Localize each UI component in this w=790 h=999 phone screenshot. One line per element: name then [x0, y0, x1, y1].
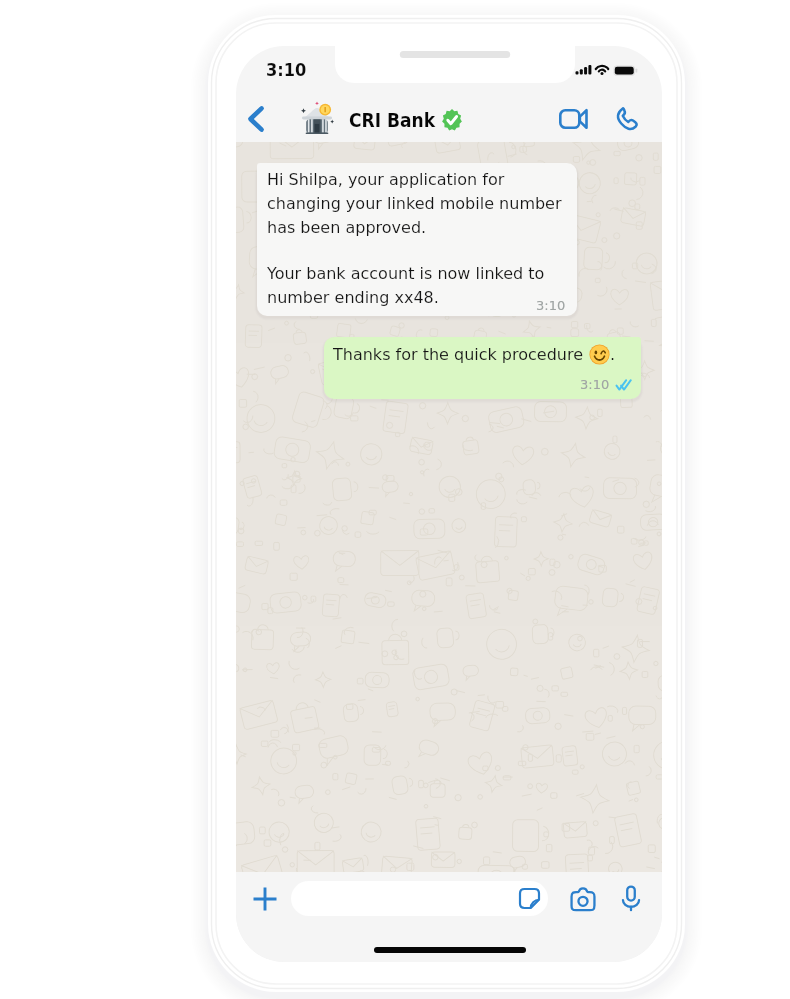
staticText: CRI Bank [349, 109, 436, 131]
staticText: Your bank account is now linked to numbe… [267, 264, 568, 307]
staticText: . [610, 345, 616, 364]
button[interactable]: Voice message [610, 877, 652, 919]
staticText: Hi Shilpa, your application for changing… [267, 170, 568, 237]
button[interactable]: Thanks for the quick procedure [324, 337, 641, 399]
staticText: 3:10 [580, 377, 610, 392]
button[interactable]: Video call [550, 96, 596, 142]
button[interactable]: Attach [243, 877, 287, 921]
button[interactable]: Type a message [291, 881, 548, 916]
staticText: 3:10 [266, 59, 307, 80]
button[interactable]: Back [236, 96, 276, 142]
staticText: 3:10 [536, 298, 566, 313]
button[interactable]: Voice call [603, 96, 649, 142]
staticText: Thanks for the quick procedure [333, 345, 589, 364]
button[interactable]: Camera [562, 878, 604, 920]
button[interactable]: Hi Shilpa, your application for changing… [257, 163, 577, 316]
